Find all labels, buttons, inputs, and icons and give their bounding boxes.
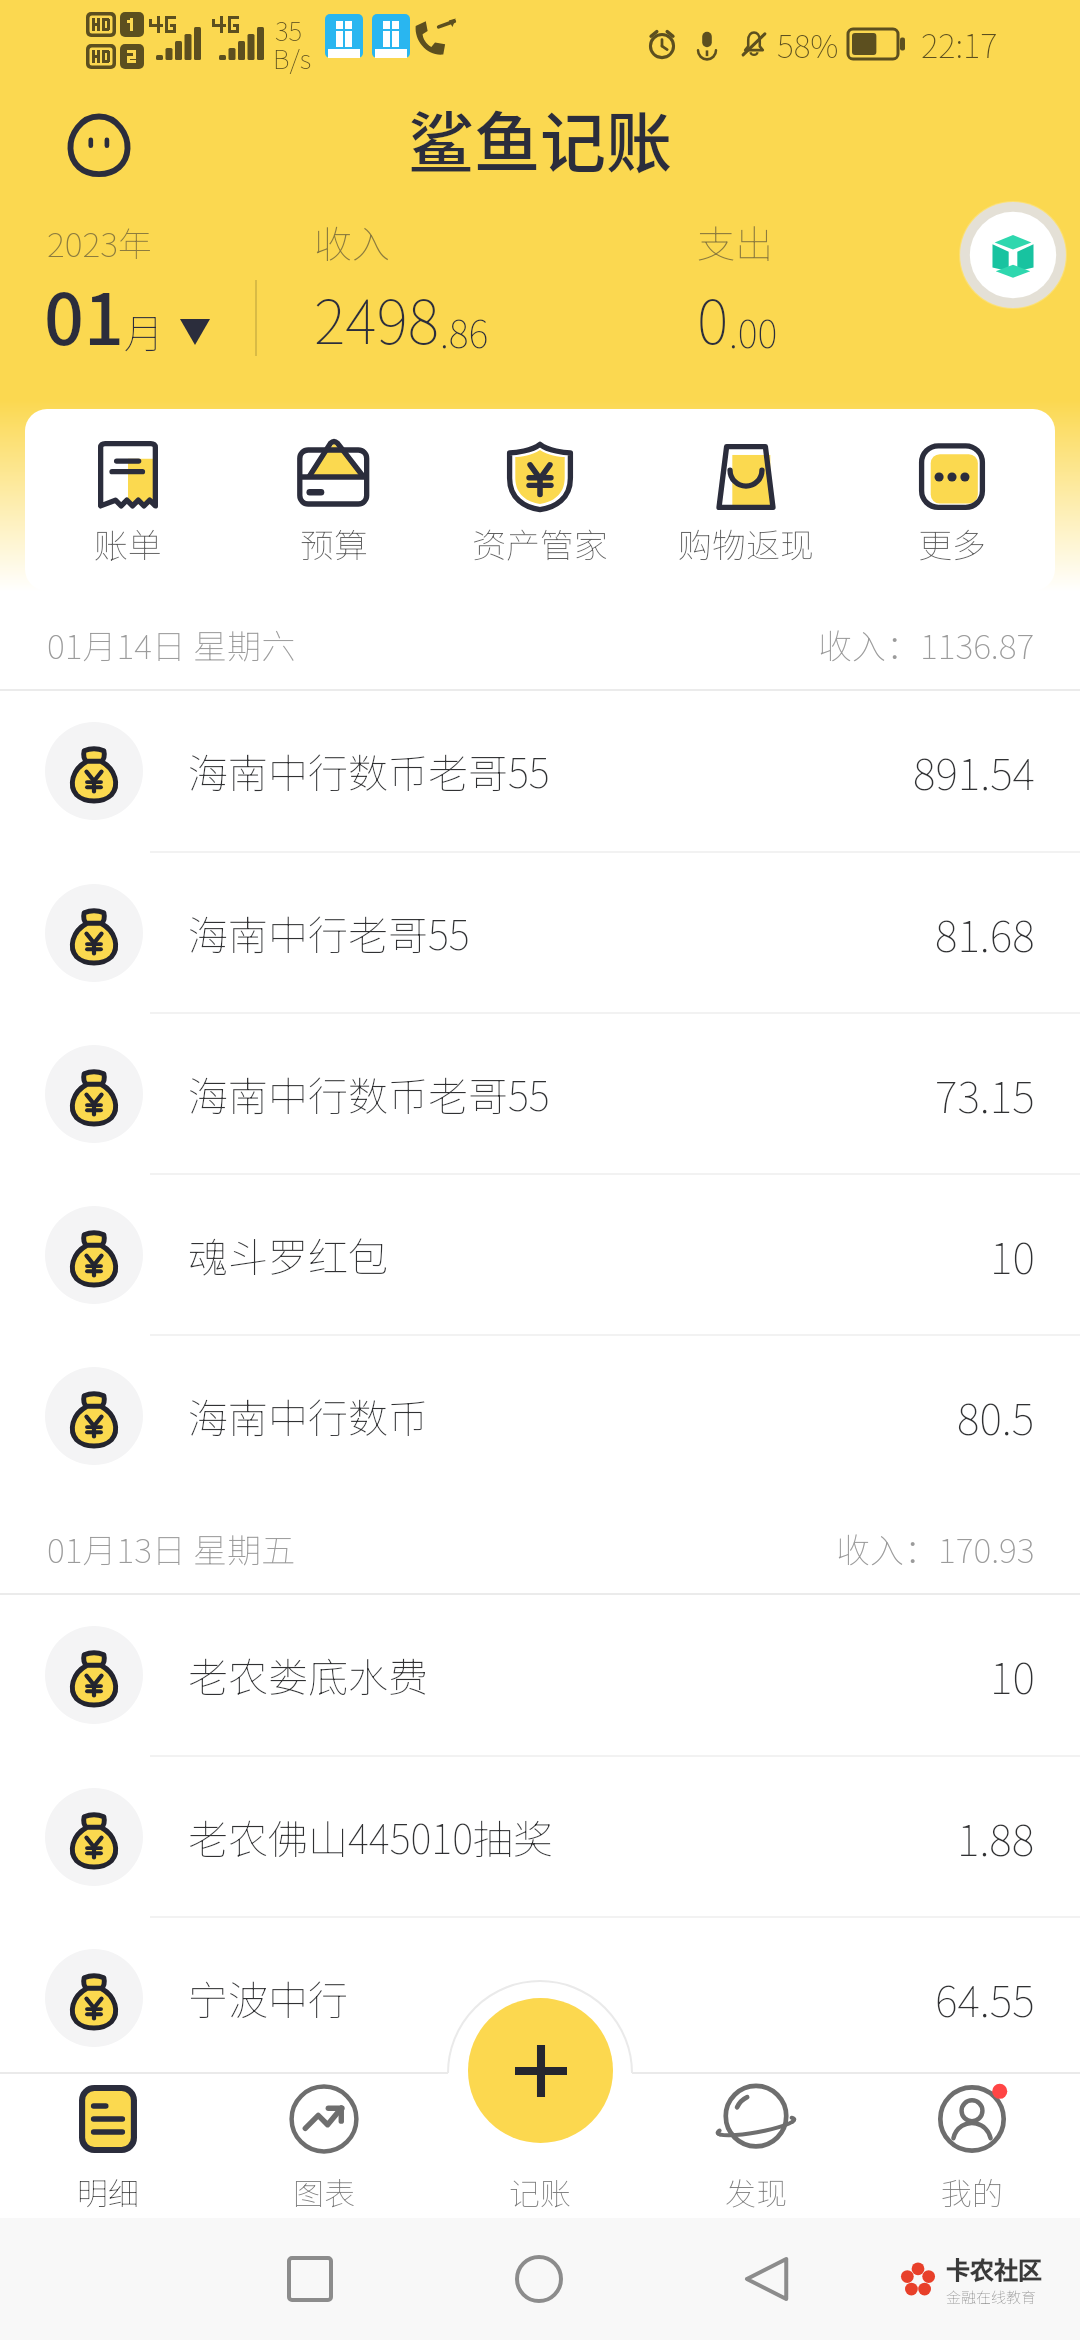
staticText: 10	[990, 1644, 1035, 1706]
staticText: 891.54	[913, 740, 1035, 802]
staticText: 图表	[293, 2169, 355, 2214]
staticText: 1136.87	[920, 620, 1035, 669]
button[interactable]: 老农娄底水费	[0, 1595, 1080, 1755]
staticText: 2498	[314, 274, 440, 361]
staticText: 卡农社区	[946, 2251, 1042, 2286]
staticText: 80.5	[957, 1385, 1035, 1447]
staticText: 更多	[918, 519, 986, 568]
staticText: 收入：	[818, 620, 920, 669]
staticText: 收入	[314, 214, 391, 269]
staticText: 海南中行数币老哥55	[188, 742, 550, 800]
button[interactable]: 购物返现	[643, 439, 849, 568]
staticText: 购物返现	[678, 519, 814, 568]
button[interactable]: 记账	[432, 2073, 648, 2218]
button[interactable]: 海南中行数币	[0, 1336, 1080, 1495]
button[interactable]: 图表	[216, 2073, 432, 2218]
button[interactable]: 明细	[0, 2073, 216, 2218]
staticText: 记账	[509, 2169, 571, 2214]
staticText: 预算	[300, 519, 368, 568]
button[interactable]: 账单	[25, 439, 231, 568]
button[interactable]: 更多	[849, 439, 1055, 568]
staticText: 账单	[94, 519, 162, 568]
staticText: 我的	[941, 2169, 1003, 2214]
button[interactable]: Add record	[468, 1998, 613, 2143]
staticText: 宁波中行	[188, 1969, 348, 2027]
staticText: 老农佛山445010抽奖	[188, 1808, 554, 1866]
staticText: 发现	[725, 2169, 787, 2214]
staticText: 22:17	[921, 20, 998, 68]
staticText: B/s	[273, 39, 312, 77]
button[interactable]: 我的	[864, 2073, 1080, 2218]
button[interactable]: 海南中行数币老哥55	[0, 691, 1080, 851]
staticText: 鲨鱼记账	[408, 90, 672, 186]
staticText: 64.55	[935, 1967, 1035, 2029]
button[interactable]: 资产管家	[437, 439, 643, 568]
staticText: 0	[697, 274, 729, 361]
staticText: 1.88	[957, 1806, 1035, 1868]
staticText: 老农娄底水费	[188, 1646, 428, 1704]
button[interactable]: 海南中行数币老哥55	[0, 1014, 1080, 1173]
staticText: .00	[729, 304, 778, 359]
button[interactable]: 老农佛山445010抽奖	[0, 1757, 1080, 1916]
staticText: 金融在线教育	[946, 2286, 1037, 2308]
staticText: 01	[44, 264, 124, 365]
button[interactable]: 海南中行老哥55	[0, 853, 1080, 1012]
button[interactable]: Profile	[68, 114, 130, 176]
staticText: 支出	[697, 214, 774, 269]
staticText: 收入：	[836, 1524, 938, 1573]
staticText: 海南中行老哥55	[188, 904, 470, 962]
staticText: 明细	[77, 2169, 139, 2214]
staticText: 170.93	[938, 1524, 1035, 1573]
staticText: 01月13日 星期五	[47, 1524, 296, 1573]
staticText: 2023年	[47, 218, 152, 267]
staticText: 海南中行数币老哥55	[188, 1065, 550, 1123]
button[interactable]: 预算	[231, 439, 437, 568]
staticText: 魂斗罗红包	[188, 1226, 388, 1284]
staticText: 73.15	[935, 1063, 1035, 1125]
button[interactable]: AR	[959, 201, 1067, 309]
staticText: 海南中行数币	[188, 1387, 428, 1445]
staticText: 58%	[777, 21, 839, 67]
staticText: 35	[275, 11, 303, 49]
button[interactable]: 宁波中行	[0, 1918, 1080, 2077]
staticText: .86	[440, 304, 489, 359]
staticText: 81.68	[935, 902, 1035, 964]
button[interactable]: 魂斗罗红包	[0, 1175, 1080, 1334]
staticText: 01月14日 星期六	[47, 620, 296, 669]
staticText: 月	[124, 302, 164, 360]
staticText: 10	[990, 1224, 1035, 1286]
button[interactable]: 发现	[648, 2073, 864, 2218]
staticText: 资产管家	[472, 519, 608, 568]
